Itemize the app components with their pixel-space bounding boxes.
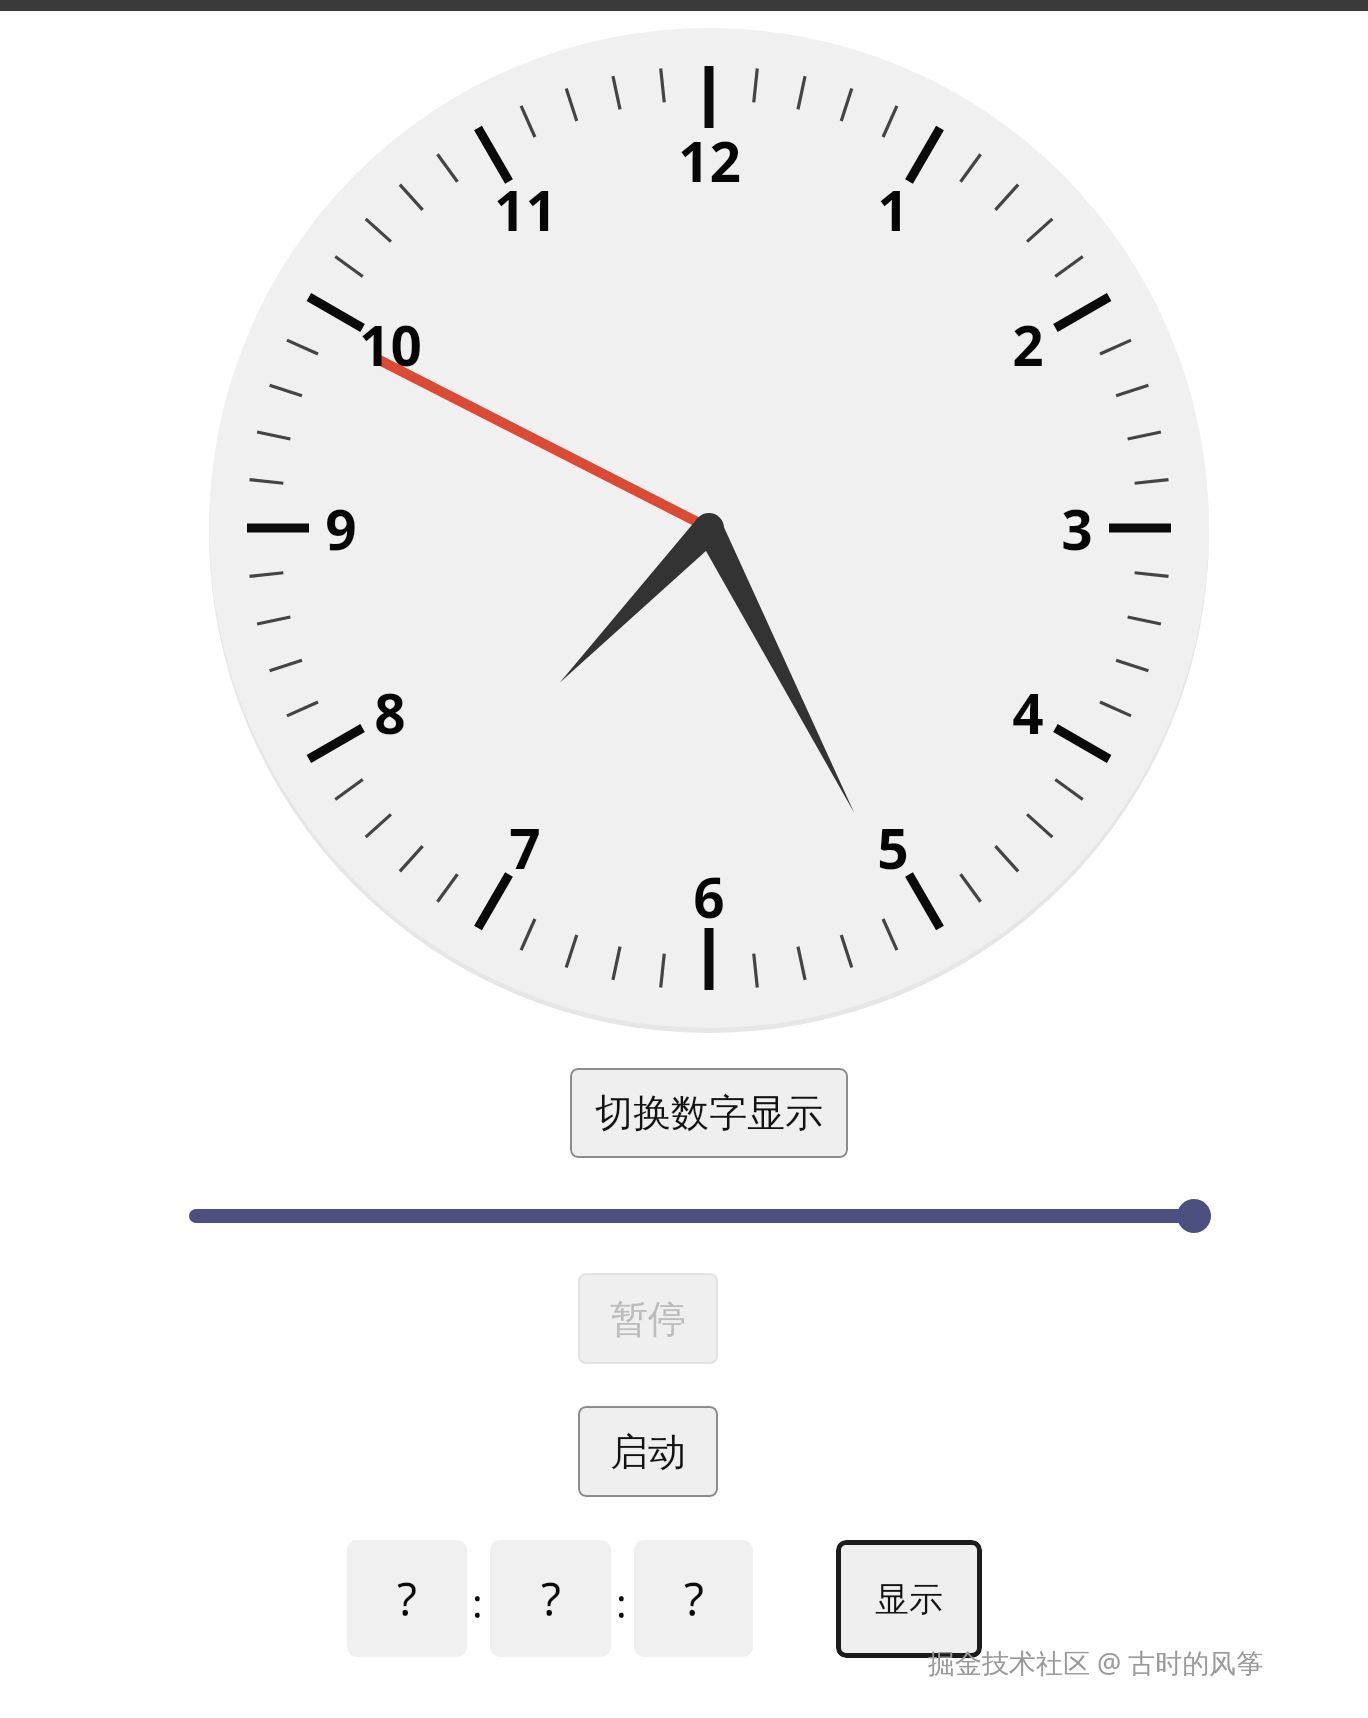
staticText: 5 <box>877 810 909 885</box>
staticText: 掘金技术社区 @ 古时的风筝 <box>928 1644 1264 1681</box>
button[interactable]: 切换数字显示 <box>570 1068 848 1158</box>
staticText: 显示 <box>875 1578 943 1621</box>
staticText: 7 <box>509 810 541 885</box>
button[interactable]: Time field <box>490 1540 611 1657</box>
staticText: ? <box>397 1567 417 1630</box>
staticText: : <box>616 1575 627 1629</box>
staticText: 12 <box>678 123 741 198</box>
staticText: 8 <box>374 675 406 750</box>
button[interactable]: 启动 <box>578 1406 718 1497</box>
staticText: 4 <box>1012 675 1044 750</box>
staticText: 10 <box>359 307 422 382</box>
staticText: 启动 <box>610 1428 686 1476</box>
staticText: 9 <box>325 491 357 566</box>
staticText: 1 <box>877 172 909 247</box>
staticText: 2 <box>1012 307 1044 382</box>
staticText: : <box>472 1575 483 1629</box>
staticText: ? <box>541 1567 561 1630</box>
staticText: 6 <box>693 859 725 934</box>
staticText: 暂停 <box>610 1295 686 1343</box>
staticText: 3 <box>1061 491 1093 566</box>
staticText: 11 <box>494 172 557 247</box>
staticText: ? <box>684 1567 704 1630</box>
button[interactable]: Speed slider <box>180 1188 1212 1244</box>
button[interactable]: 暂停 <box>578 1273 718 1364</box>
button[interactable]: Time field <box>634 1540 753 1657</box>
staticText: 切换数字显示 <box>595 1089 823 1137</box>
button[interactable]: 显示 <box>836 1540 982 1658</box>
button[interactable]: Time field <box>347 1540 467 1657</box>
